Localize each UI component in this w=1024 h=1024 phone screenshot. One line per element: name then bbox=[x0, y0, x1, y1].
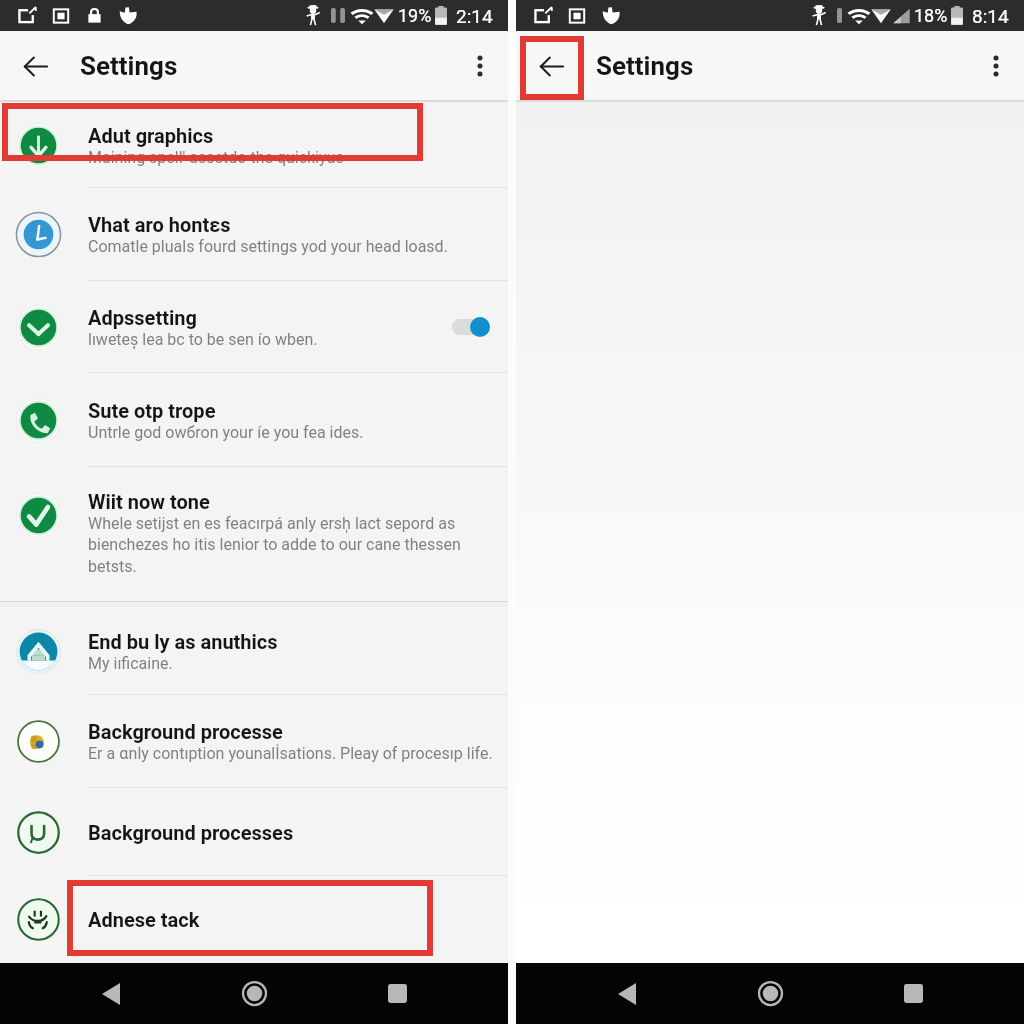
button[interactable]: Recent apps bbox=[373, 963, 421, 1024]
button[interactable]: Toggle setting bbox=[426, 304, 508, 350]
button[interactable]: End bu ly as anuthics bbox=[0, 607, 508, 695]
button[interactable]: Vhat aro hontɛs bbox=[0, 188, 508, 281]
staticText: Whele setijst en es feacırpá anly ersh̩ … bbox=[88, 514, 470, 576]
button[interactable]: Home bbox=[746, 963, 794, 1024]
staticText: Wiit now tone bbox=[88, 490, 210, 513]
staticText: End bu ly as anuthics bbox=[88, 630, 278, 653]
button[interactable]: Navigate up bbox=[9, 40, 61, 92]
staticText: Untrle god owбron your íe you fea ides. bbox=[88, 423, 364, 442]
staticText: lıweteș lea bc to be sen ío wben. bbox=[88, 330, 318, 349]
staticText: Settings bbox=[80, 51, 178, 81]
button[interactable]: Navigate up bbox=[525, 40, 577, 92]
staticText: Background processe bbox=[88, 720, 283, 743]
staticText: Sute otp trope bbox=[88, 399, 216, 422]
button[interactable]: Back bbox=[87, 963, 135, 1024]
staticText: 8:14 bbox=[972, 5, 1009, 27]
staticText: Adnese tack bbox=[88, 908, 200, 931]
staticText: Adut graphics bbox=[88, 124, 214, 147]
button[interactable]: Back bbox=[603, 963, 651, 1024]
staticText: 19% bbox=[398, 5, 432, 26]
button[interactable]: Recent apps bbox=[889, 963, 937, 1024]
staticText: Vhat aro hontɛs bbox=[88, 213, 231, 236]
button[interactable]: Sute otp trope bbox=[0, 373, 508, 467]
button[interactable]: Background processes bbox=[0, 788, 508, 876]
button[interactable]: Adnese tack bbox=[0, 876, 508, 963]
staticText: 2:14 bbox=[456, 5, 493, 27]
button[interactable]: Adpssetting bbox=[0, 281, 508, 373]
staticText: Adpssetting bbox=[88, 306, 197, 329]
staticText: Comatle pluals fourd settings yod your h… bbox=[88, 237, 448, 256]
button[interactable]: More options bbox=[458, 44, 502, 88]
staticText: My iıficaine. bbox=[88, 654, 173, 673]
button[interactable]: More options bbox=[974, 44, 1018, 88]
button[interactable]: Background processe bbox=[0, 695, 508, 788]
staticText: Er a ɑnly contıption younalİsations. Ple… bbox=[88, 744, 493, 763]
button[interactable]: Adut graphics bbox=[0, 102, 508, 188]
staticText: Settings bbox=[596, 51, 694, 81]
staticText: Background processes bbox=[88, 821, 294, 844]
button[interactable]: Home bbox=[230, 963, 278, 1024]
staticText: Maining spell' assetdo the quickiyus bbox=[88, 148, 344, 167]
button[interactable]: Wiit now tone bbox=[0, 467, 508, 601]
staticText: 18% bbox=[914, 5, 948, 26]
